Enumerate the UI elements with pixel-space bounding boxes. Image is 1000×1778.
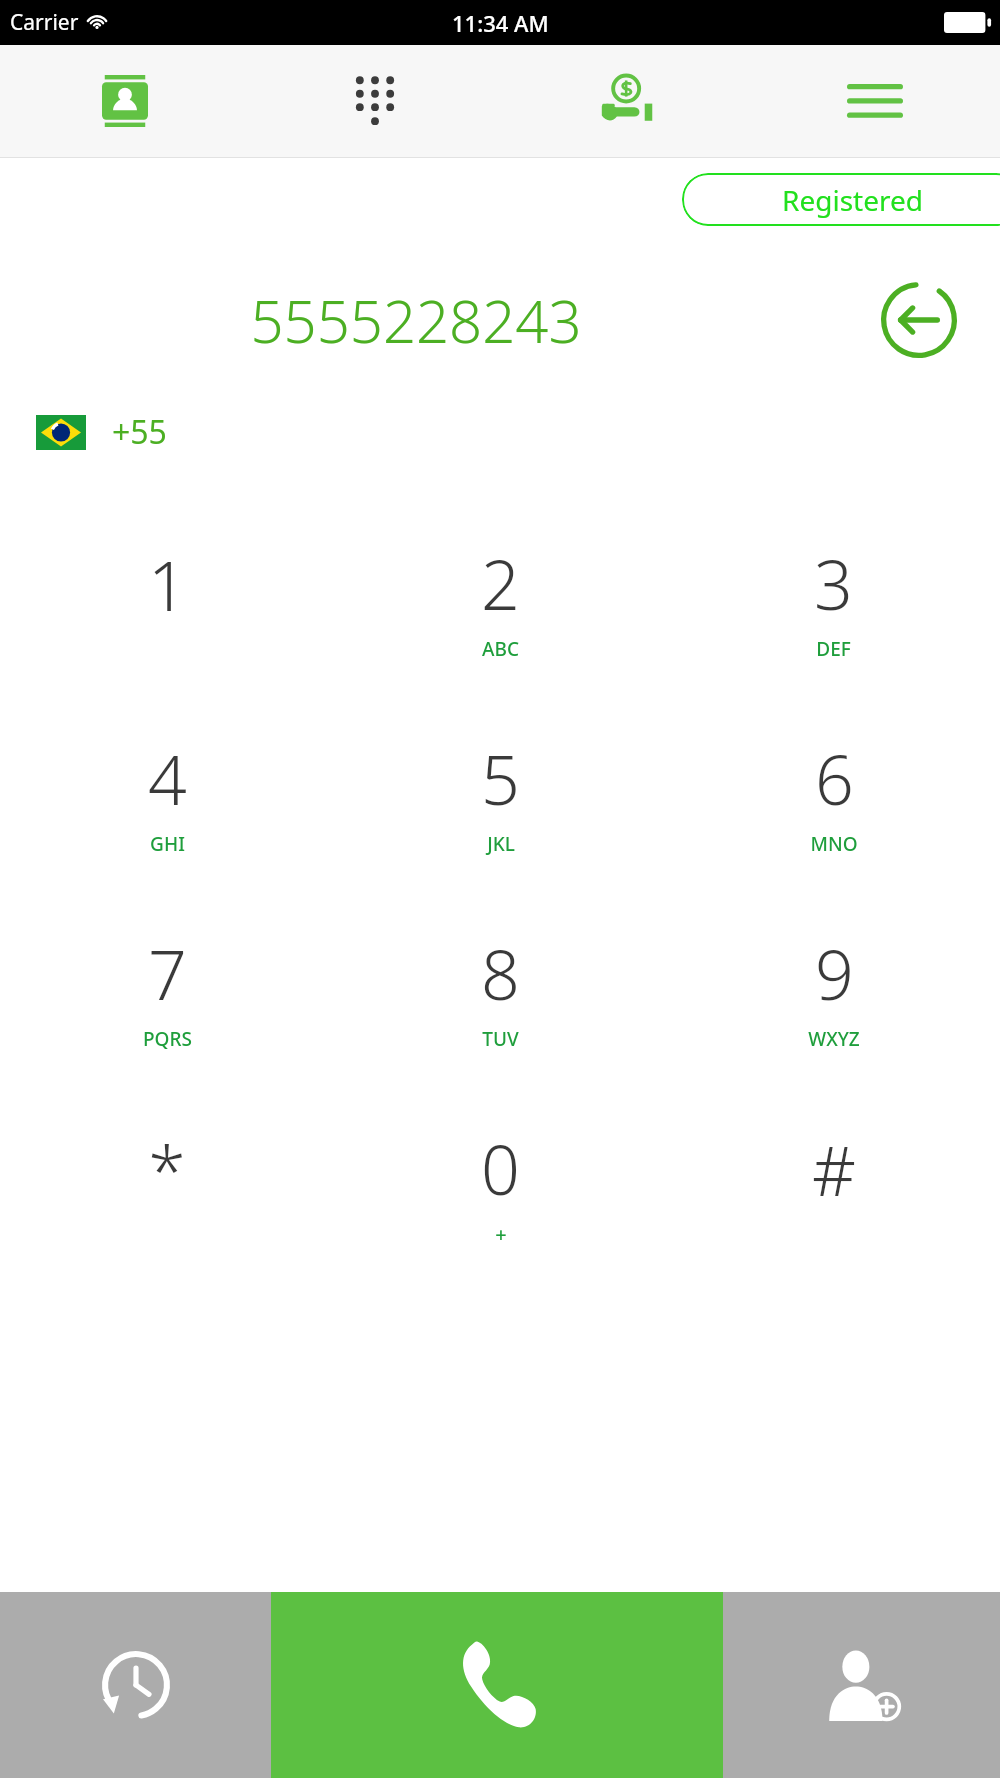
staticText: PQRS — [143, 1026, 192, 1052]
button[interactable]: Registered — [682, 173, 1000, 226]
staticText: GHI — [150, 831, 185, 857]
button[interactable]: * — [0, 1087, 334, 1282]
staticText: 5 — [481, 732, 520, 825]
staticText: 11:34 AM — [452, 8, 549, 38]
button[interactable]: # — [667, 1087, 1000, 1282]
button[interactable]: 8 — [334, 892, 667, 1087]
staticText: MNO — [810, 831, 858, 857]
button[interactable]: Recent calls — [0, 1592, 271, 1778]
button[interactable]: Menu — [750, 45, 1000, 157]
staticText: # — [812, 1123, 856, 1216]
staticText: +55 — [112, 410, 167, 454]
staticText: 8 — [481, 927, 520, 1020]
staticText: 2 — [481, 537, 520, 630]
button[interactable]: Backspace — [876, 277, 962, 363]
staticText: JKL — [487, 831, 515, 857]
button[interactable]: 0 — [334, 1087, 667, 1282]
staticText: 9 — [815, 927, 854, 1020]
staticText: + — [495, 1221, 507, 1248]
button[interactable]: +55 — [0, 400, 1000, 464]
button[interactable]: Contacts — [0, 45, 250, 157]
staticText: 5555228243 — [250, 281, 582, 360]
staticText: 7 — [148, 927, 187, 1020]
staticText: 1 — [148, 538, 187, 631]
staticText: 4 — [148, 732, 187, 825]
button[interactable]: 5 — [334, 697, 667, 892]
staticText: DEF — [816, 636, 851, 662]
button[interactable]: Dialpad — [250, 45, 500, 157]
button[interactable]: 7 — [0, 892, 334, 1087]
button[interactable]: Balance — [500, 45, 750, 157]
staticText: TUV — [482, 1026, 519, 1052]
button[interactable]: 3 — [667, 502, 1000, 697]
staticText: Carrier — [10, 8, 79, 37]
staticText: 0 — [481, 1122, 520, 1215]
staticText: 6 — [815, 732, 854, 825]
button[interactable]: 1 — [0, 502, 334, 697]
button[interactable]: 6 — [667, 697, 1000, 892]
staticText: WXYZ — [808, 1026, 860, 1052]
button[interactable]: 9 — [667, 892, 1000, 1087]
staticText: * — [148, 1123, 186, 1216]
staticText: 3 — [814, 537, 853, 630]
button[interactable]: Add contact — [723, 1592, 1000, 1778]
button[interactable]: Call — [271, 1592, 723, 1778]
staticText: ABC — [482, 636, 519, 662]
button[interactable]: 2 — [334, 502, 667, 697]
button[interactable]: 4 — [0, 697, 334, 892]
staticText: Registered — [782, 181, 923, 219]
